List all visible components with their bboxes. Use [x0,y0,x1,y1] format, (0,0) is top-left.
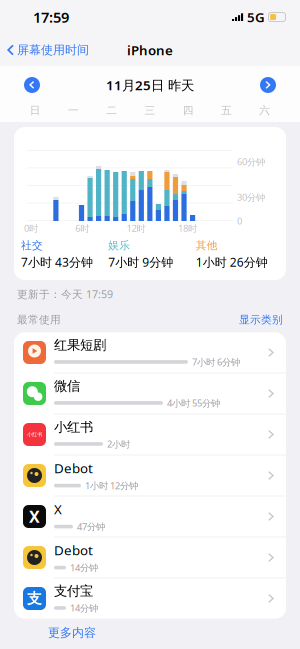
button[interactable]: 显示类别 [239,313,283,326]
staticText: 4小时 55分钟 [167,397,220,409]
button[interactable]: 屏幕使用时间 [0,38,89,62]
staticText: 显示类别 [239,313,283,326]
staticText: 最常使用 [17,313,61,326]
staticText: 1小时 12分钟 [85,479,138,492]
staticText: 小红书 [27,431,42,438]
staticText: 五 [221,104,232,117]
staticText: 47分钟 [77,520,105,533]
staticText: 7小时 6分钟 [192,356,240,368]
staticText: 30分钟 [237,191,265,203]
staticText: Debot [54,541,93,559]
staticText: 三 [144,104,155,117]
staticText: 6时 [75,222,89,234]
staticText: 1小时 26分钟 [196,254,268,270]
staticText: 支 [27,589,42,607]
staticText: 11月25日 昨天 [106,76,194,94]
staticText: 六 [259,104,270,117]
staticText: 更新于：今天 17:59 [17,287,113,301]
staticText: 17:59 [33,7,69,27]
staticText: 二 [106,104,117,117]
button[interactable]: Debot [14,455,286,496]
button[interactable]: 微信 [14,373,286,414]
staticText: 更多内容 [48,625,96,640]
staticText: 红果短剧 [54,337,106,353]
staticText: 12时 [127,222,146,234]
staticText: 14分钟 [70,602,98,614]
staticText: X [29,506,40,527]
staticText: Debot [54,459,93,477]
staticText: 一 [68,104,79,117]
button[interactable]: 前一天 [16,69,48,101]
staticText: 其他 [196,239,218,252]
button[interactable]: 更多内容 [48,625,96,640]
staticText: 社交 [21,239,43,252]
staticText: 5G [247,8,265,26]
staticText: 微信 [54,378,80,394]
staticText: 0 [237,215,242,227]
staticText: 小红书 [54,419,93,435]
staticText: 14分钟 [70,561,98,574]
staticText: 18时 [178,222,197,234]
button[interactable]: 小红书 [14,414,286,455]
staticText: 支付宝 [54,583,93,599]
staticText: iPhone [127,41,173,59]
staticText: 屏幕使用时间 [17,43,89,57]
staticText: X [54,500,62,518]
staticText: 7小时 9分钟 [108,254,173,270]
button[interactable]: 后一天 [252,69,284,101]
staticText: 2小时 [107,438,130,450]
staticText: 60分钟 [237,156,265,168]
button[interactable]: X [14,496,286,537]
button[interactable]: Debot [14,537,286,578]
button[interactable]: 红果短剧 [14,332,286,373]
staticText: 娱乐 [108,239,130,252]
staticText: 0时 [24,222,38,234]
button[interactable]: 支 [14,578,286,619]
staticText: 7小时 43分钟 [21,254,93,270]
staticText: 日 [30,104,41,117]
staticText: 四 [183,104,194,117]
